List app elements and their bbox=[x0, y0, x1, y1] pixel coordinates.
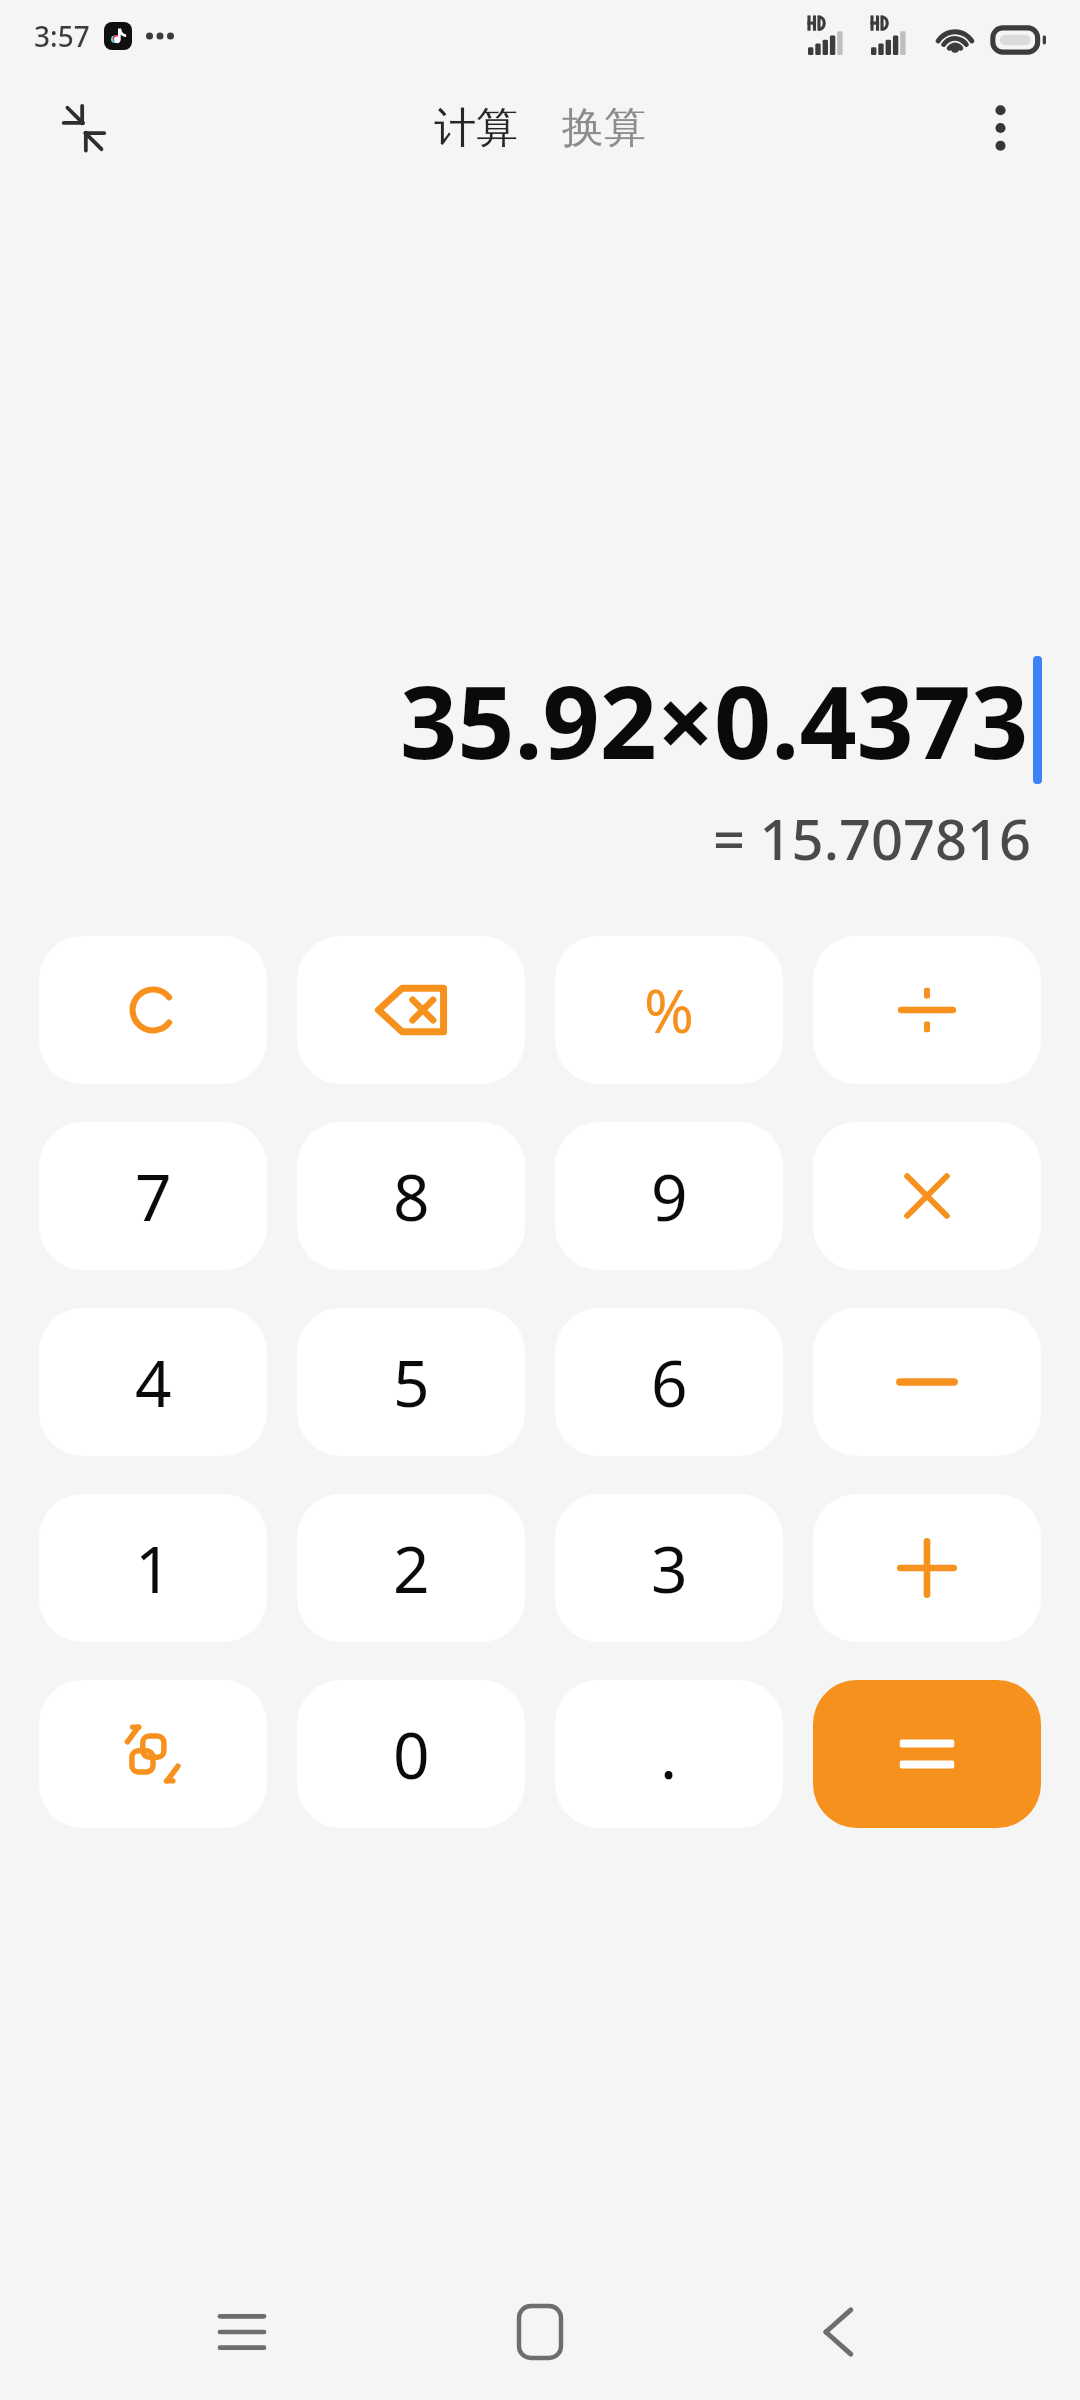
staticText: 1 bbox=[135, 1525, 172, 1612]
button[interactable]: 换算 bbox=[550, 94, 658, 163]
staticText: % bbox=[644, 969, 694, 1051]
button[interactable]: Multiply bbox=[813, 1122, 1041, 1270]
staticText: 换算 bbox=[562, 102, 646, 155]
button[interactable]: Backspace bbox=[297, 936, 525, 1084]
button[interactable]: 1 bbox=[39, 1494, 267, 1642]
button[interactable]: 2 bbox=[297, 1494, 525, 1642]
button[interactable]: Recents bbox=[186, 2276, 298, 2388]
staticText: 7 bbox=[135, 1153, 172, 1240]
button[interactable]: Divide bbox=[813, 936, 1041, 1084]
button[interactable]: 7 bbox=[39, 1122, 267, 1270]
button[interactable]: Back bbox=[782, 2276, 894, 2388]
staticText: 6 bbox=[651, 1339, 688, 1426]
staticText: 0 bbox=[393, 1711, 430, 1798]
button[interactable]: . bbox=[555, 1680, 783, 1828]
staticText: 5 bbox=[393, 1339, 430, 1426]
button[interactable]: Clear bbox=[39, 936, 267, 1084]
staticText: = 15.707816 bbox=[713, 800, 1032, 876]
button[interactable]: 8 bbox=[297, 1122, 525, 1270]
staticText: 35.92×0.4373 bbox=[400, 652, 1029, 788]
staticText: 8 bbox=[393, 1153, 430, 1240]
staticText: 3:57 bbox=[34, 17, 90, 55]
staticText: 4 bbox=[135, 1339, 172, 1426]
staticText: 3 bbox=[651, 1525, 688, 1612]
staticText: 2 bbox=[393, 1525, 430, 1612]
button[interactable]: More options bbox=[962, 90, 1038, 166]
staticText: . bbox=[660, 1711, 678, 1798]
button[interactable]: 0 bbox=[297, 1680, 525, 1828]
button[interactable]: Plus bbox=[813, 1494, 1041, 1642]
button[interactable]: 9 bbox=[555, 1122, 783, 1270]
button[interactable]: Collapse bbox=[44, 88, 124, 168]
button[interactable]: 4 bbox=[39, 1308, 267, 1456]
button[interactable]: Equals bbox=[813, 1680, 1041, 1828]
button[interactable]: 3 bbox=[555, 1494, 783, 1642]
button[interactable]: 计算 bbox=[422, 94, 530, 163]
button[interactable]: Percent bbox=[555, 936, 783, 1084]
button[interactable]: Minus bbox=[813, 1308, 1041, 1456]
staticText: 计算 bbox=[434, 102, 518, 155]
staticText: 9 bbox=[651, 1153, 688, 1240]
button[interactable]: 5 bbox=[297, 1308, 525, 1456]
button[interactable]: 6 bbox=[555, 1308, 783, 1456]
button[interactable]: Home bbox=[484, 2276, 596, 2388]
button[interactable]: Scientific mode bbox=[39, 1680, 267, 1828]
